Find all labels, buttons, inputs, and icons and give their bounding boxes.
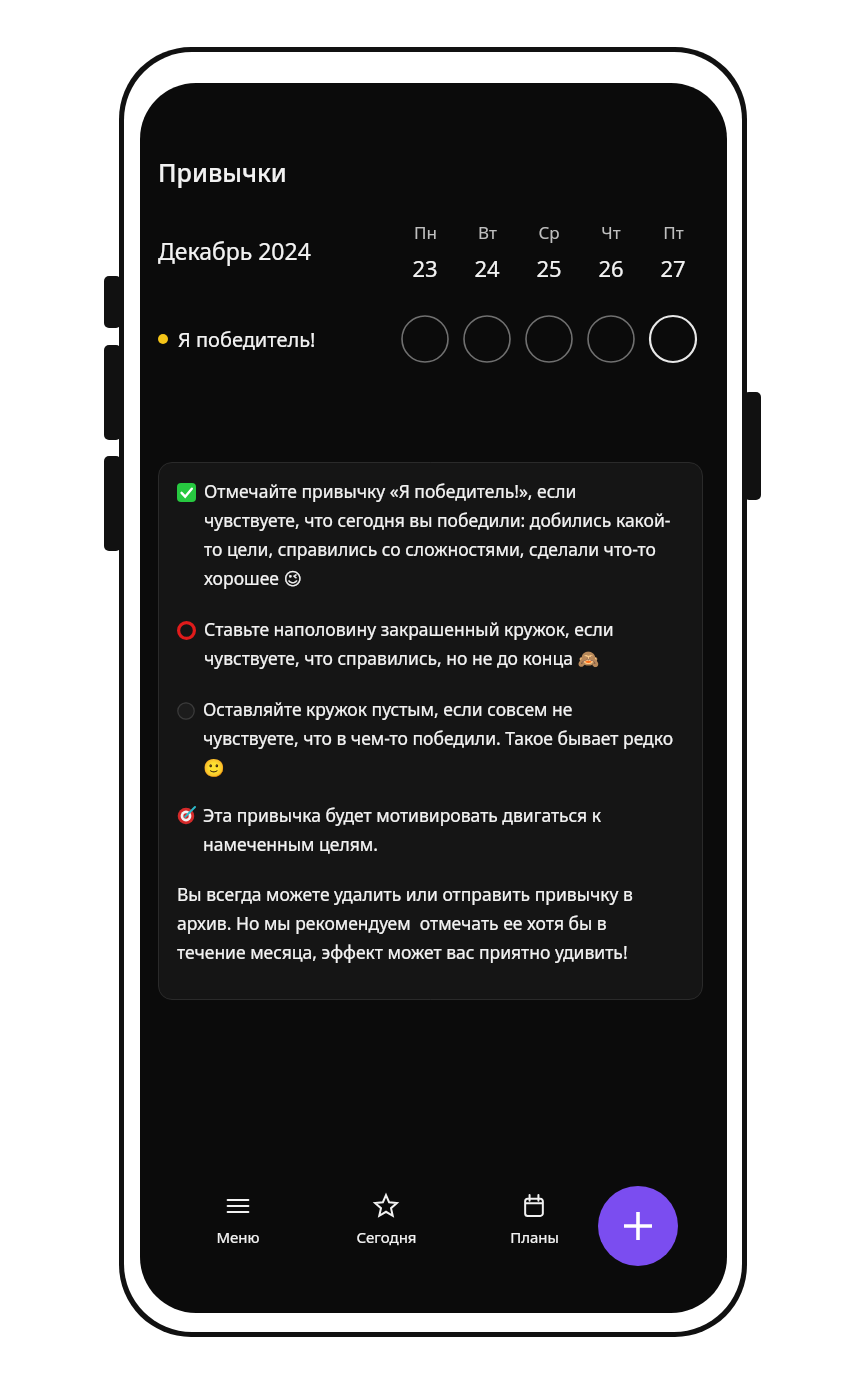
button[interactable]: Добавить привычку bbox=[598, 1186, 678, 1266]
staticText: Сегодня bbox=[356, 1227, 417, 1247]
staticText: Ср bbox=[538, 221, 560, 244]
staticText: Эта привычка будет мотивировать двигатьс… bbox=[203, 803, 602, 856]
staticText: Вы всегда можете удалить или отправить п… bbox=[177, 882, 633, 964]
staticText: Отмечайте привычку «Я победитель!», если… bbox=[204, 479, 671, 590]
staticText: Оставляйте кружок пустым, если совсем не… bbox=[203, 697, 674, 778]
staticText: 27 bbox=[660, 253, 686, 283]
staticText: Планы bbox=[510, 1227, 559, 1247]
staticText: Декабрь 2024 bbox=[158, 235, 311, 266]
staticText: Пт bbox=[663, 221, 684, 244]
staticText: 23 bbox=[412, 253, 438, 283]
button[interactable]: Сегодня bbox=[326, 1193, 446, 1255]
button[interactable]: Отметить день 25 bbox=[521, 311, 577, 367]
button[interactable]: Меню bbox=[178, 1193, 298, 1255]
staticText: Привычки bbox=[158, 155, 287, 189]
button[interactable]: Отметить день 27 bbox=[645, 311, 701, 367]
button[interactable]: Я победитель! bbox=[158, 311, 316, 367]
staticText: Вт bbox=[478, 221, 497, 244]
staticText: Я победитель! bbox=[178, 326, 316, 353]
button[interactable]: Отмечайте привычку «Я победитель!», если… bbox=[158, 462, 703, 1000]
staticText: Пн bbox=[414, 221, 437, 244]
button[interactable]: Отметить день 24 bbox=[459, 311, 515, 367]
staticText: Чт bbox=[601, 221, 621, 244]
staticText: 24 bbox=[474, 253, 500, 283]
staticText: 25 bbox=[536, 253, 562, 283]
button[interactable]: Отметить день 26 bbox=[583, 311, 639, 367]
staticText: Ставьте наполовину закрашенный кружок, е… bbox=[204, 617, 614, 670]
staticText: Меню bbox=[216, 1227, 260, 1247]
button[interactable]: Отметить день 23 bbox=[397, 311, 453, 367]
button[interactable]: Планы bbox=[474, 1193, 594, 1255]
staticText: 26 bbox=[598, 253, 624, 283]
